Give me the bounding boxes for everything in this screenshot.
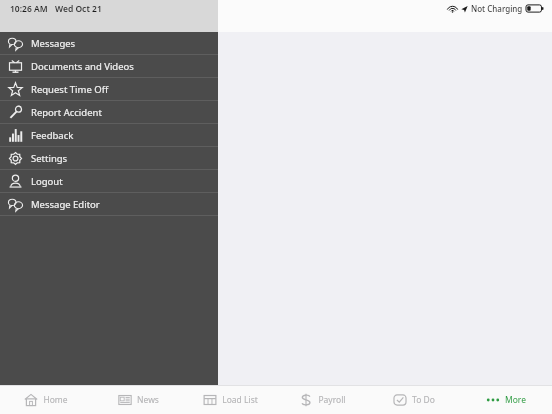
staticText: Settings (31, 152, 68, 165)
button[interactable]: Messages (0, 32, 218, 55)
button[interactable]: Feedback (0, 124, 218, 147)
button[interactable]: Documents and Videos (0, 55, 218, 78)
staticText: Documents and Videos (31, 60, 134, 73)
staticText: Logout (31, 175, 63, 188)
button[interactable]: Message Editor (0, 193, 218, 216)
staticText: Request Time Off (31, 83, 109, 96)
button[interactable]: News (92, 386, 184, 414)
button[interactable]: To Do (368, 386, 460, 414)
staticText: Message Editor (31, 198, 100, 211)
staticText: More (505, 394, 526, 406)
staticText: Messages (31, 37, 76, 50)
staticText: Report Accident (31, 106, 102, 119)
button[interactable]: Load List (184, 386, 276, 414)
button[interactable]: More (460, 386, 552, 414)
button[interactable]: Home (0, 386, 92, 414)
button[interactable]: Report Accident (0, 101, 218, 124)
staticText: Home (43, 394, 68, 406)
staticText: Wed Oct 21 (55, 3, 102, 15)
button[interactable]: Settings (0, 147, 218, 170)
button[interactable]: Logout (0, 170, 218, 193)
staticText: Load List (222, 394, 258, 406)
staticText: Feedback (31, 129, 74, 142)
button[interactable]: Request Time Off (0, 78, 218, 101)
button[interactable]: Payroll (276, 386, 368, 414)
staticText: 10:26 AM (10, 3, 48, 15)
staticText: To Do (412, 394, 435, 406)
staticText: Not Charging (471, 3, 523, 14)
staticText: Payroll (318, 394, 346, 406)
staticText: News (137, 394, 159, 406)
